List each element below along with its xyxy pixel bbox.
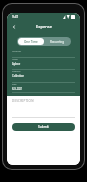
staticText: Aplece: [12, 62, 21, 66]
staticText: Collection: [12, 74, 25, 78]
button[interactable]: One Time: [18, 38, 44, 45]
staticText: Submit: [38, 125, 49, 129]
staticText: Name: [12, 58, 18, 61]
staticText: 9:41: [12, 15, 19, 19]
button[interactable]: Recurring: [44, 38, 70, 45]
staticText: Amount: [12, 49, 22, 52]
staticText: DESCRIPTION: [12, 99, 34, 103]
staticText: Recurring: [50, 40, 65, 44]
staticText: One Time: [24, 40, 38, 44]
staticText: Expense: [36, 24, 52, 29]
button[interactable]: Back: [9, 22, 18, 31]
button[interactable]: Submit: [12, 123, 75, 131]
staticText: Category: [12, 70, 21, 73]
staticText: Date: [12, 83, 17, 86]
staticText: 8-9-2021: [12, 87, 23, 91]
